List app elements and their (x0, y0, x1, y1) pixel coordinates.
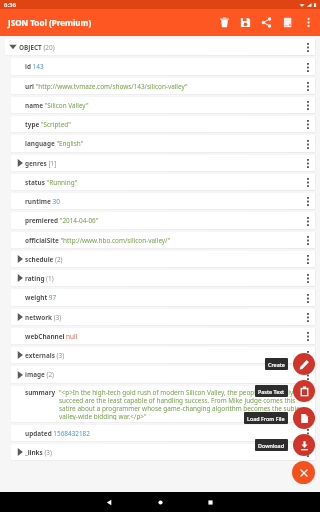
staticText: premiered "2014-04-06" (25, 216, 301, 225)
button[interactable]: Row options (301, 41, 314, 53)
staticText: externals (3) (25, 351, 301, 360)
button[interactable]: officialSite "http://www.hbo.com/silicon… (11, 232, 315, 248)
button[interactable]: rating (1) (11, 270, 315, 286)
button[interactable]: runtime 30 (11, 193, 315, 209)
staticText: network (3) (25, 313, 301, 322)
button[interactable]: name "Silicon Valley" (11, 97, 315, 113)
button[interactable]: More options (298, 12, 319, 33)
button[interactable]: url "http://www.tvmaze.com/shows/143/sil… (11, 78, 315, 94)
button[interactable]: id 143 (11, 58, 315, 75)
staticText: "<p>In the high-tech gold rush of modern… (59, 388, 301, 420)
staticText: updated 1568432182 (25, 429, 301, 438)
button[interactable]: externals (3) (11, 347, 315, 363)
button[interactable]: Home (150, 492, 170, 512)
button[interactable]: Row options (301, 388, 314, 400)
staticText: JSON Tool (Premium) (8, 17, 92, 28)
button[interactable]: Row options (301, 99, 314, 111)
button[interactable]: Paste Text (293, 380, 315, 402)
button[interactable]: Row options (301, 61, 314, 73)
staticText: genres [1] (25, 159, 301, 168)
staticText: _links (3) (25, 448, 301, 457)
button[interactable]: Row options (301, 176, 314, 188)
button[interactable]: webChannel null (11, 328, 315, 344)
button[interactable]: Paste Text (255, 385, 288, 397)
staticText: Download (258, 442, 285, 449)
staticText: Load From File (247, 415, 285, 422)
button[interactable]: Row options (301, 118, 314, 130)
button[interactable]: weight 97 (11, 289, 315, 306)
button[interactable]: Download (293, 434, 315, 456)
button[interactable]: Load From File (244, 412, 288, 424)
button[interactable]: Row options (301, 330, 314, 342)
button[interactable]: type "Scripted" (11, 116, 315, 132)
button[interactable]: Recents (200, 492, 220, 512)
button[interactable]: Row options (301, 80, 314, 92)
button[interactable]: Row options (301, 311, 314, 323)
staticText: rating (1) (25, 274, 301, 283)
button[interactable]: Row options (301, 446, 314, 458)
button[interactable]: network (3) (11, 309, 315, 325)
staticText: language "English" (25, 139, 301, 148)
button[interactable]: OBJECT (20) (5, 39, 315, 55)
staticText: runtime 30 (25, 197, 301, 206)
staticText: Paste Text (258, 388, 285, 395)
button[interactable]: Note (277, 12, 298, 33)
button[interactable]: Row options (301, 215, 314, 227)
button[interactable]: premiered "2014-04-06" (11, 212, 315, 229)
button[interactable]: Row options (301, 369, 314, 381)
button[interactable]: Row options (301, 157, 314, 169)
staticText: status "Running" (25, 178, 301, 187)
staticText: url "http://www.tvmaze.com/shows/143/sil… (25, 82, 301, 91)
button[interactable]: Row options (301, 253, 314, 265)
button[interactable]: Save (235, 12, 256, 33)
button[interactable]: Delete (214, 12, 235, 33)
button[interactable]: language "English" (11, 135, 315, 152)
staticText: officialSite "http://www.hbo.com/silicon… (25, 236, 301, 245)
button[interactable]: Close menu (292, 461, 315, 484)
staticText: schedule (2) (25, 255, 301, 264)
button[interactable]: Row options (301, 272, 314, 284)
button[interactable]: _links (3) (11, 444, 315, 460)
button[interactable]: genres [1] (11, 155, 315, 171)
staticText: image (2) (25, 370, 301, 379)
button[interactable]: updated 1568432182 (11, 425, 315, 441)
button[interactable]: Download (255, 439, 288, 451)
button[interactable]: Create (293, 353, 315, 375)
staticText: OBJECT (20) (19, 43, 301, 52)
staticText: Create (268, 361, 285, 368)
button[interactable]: Row options (301, 292, 314, 304)
button[interactable]: Row options (301, 349, 314, 361)
button[interactable]: image (2) (11, 366, 315, 383)
staticText: id 143 (25, 62, 301, 71)
button[interactable]: Share (256, 12, 277, 33)
button[interactable]: Load From File (293, 407, 315, 429)
button[interactable]: schedule (2) (11, 251, 315, 267)
button[interactable]: status "Running" (11, 174, 315, 190)
button[interactable]: Row options (301, 427, 314, 439)
button[interactable]: Row options (301, 195, 314, 207)
staticText: summary (25, 388, 56, 397)
staticText: 6:36 (4, 1, 16, 9)
staticText: webChannel null (25, 332, 301, 341)
button[interactable]: Create (265, 358, 288, 370)
staticText: weight 97 (25, 293, 301, 302)
staticText: type "Scripted" (25, 120, 301, 129)
staticText: name "Silicon Valley" (25, 101, 301, 110)
button[interactable]: summary (11, 386, 315, 422)
button[interactable]: Row options (301, 138, 314, 150)
button[interactable]: Row options (301, 234, 314, 246)
button[interactable]: Back (99, 492, 119, 512)
